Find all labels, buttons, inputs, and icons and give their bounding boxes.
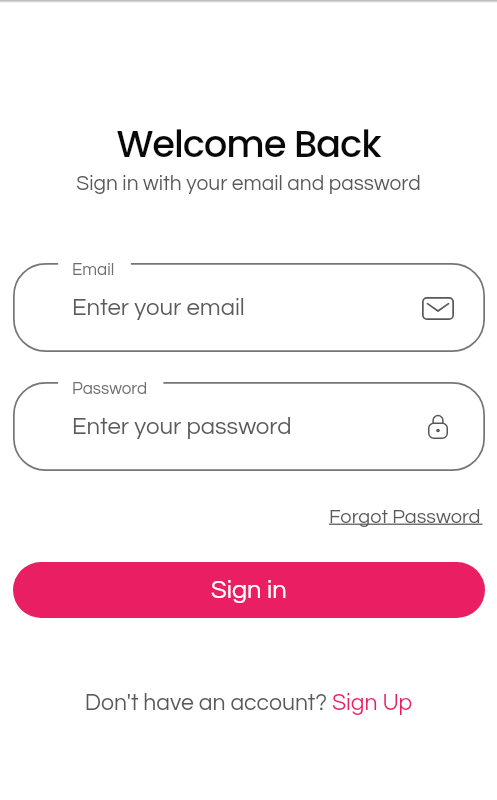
staticText: Sign in with your email and password xyxy=(0,173,497,195)
other: Password xyxy=(420,409,456,445)
button[interactable]: Password xyxy=(13,382,485,471)
staticText: Forgot Password xyxy=(329,507,481,528)
button[interactable]: Sign in xyxy=(13,562,485,618)
staticText: Email xyxy=(72,261,115,279)
staticText: Enter your password xyxy=(72,414,292,439)
other: Email xyxy=(420,290,456,326)
staticText: Password xyxy=(72,380,148,398)
staticText: Welcome Back xyxy=(0,118,497,170)
staticText: Sign in xyxy=(211,577,287,603)
button[interactable]: Forgot Password xyxy=(329,507,483,529)
button[interactable]: Email xyxy=(13,263,485,352)
button[interactable]: Don't have an account? Sign Up xyxy=(0,691,497,715)
staticText: Enter your email xyxy=(72,295,245,320)
